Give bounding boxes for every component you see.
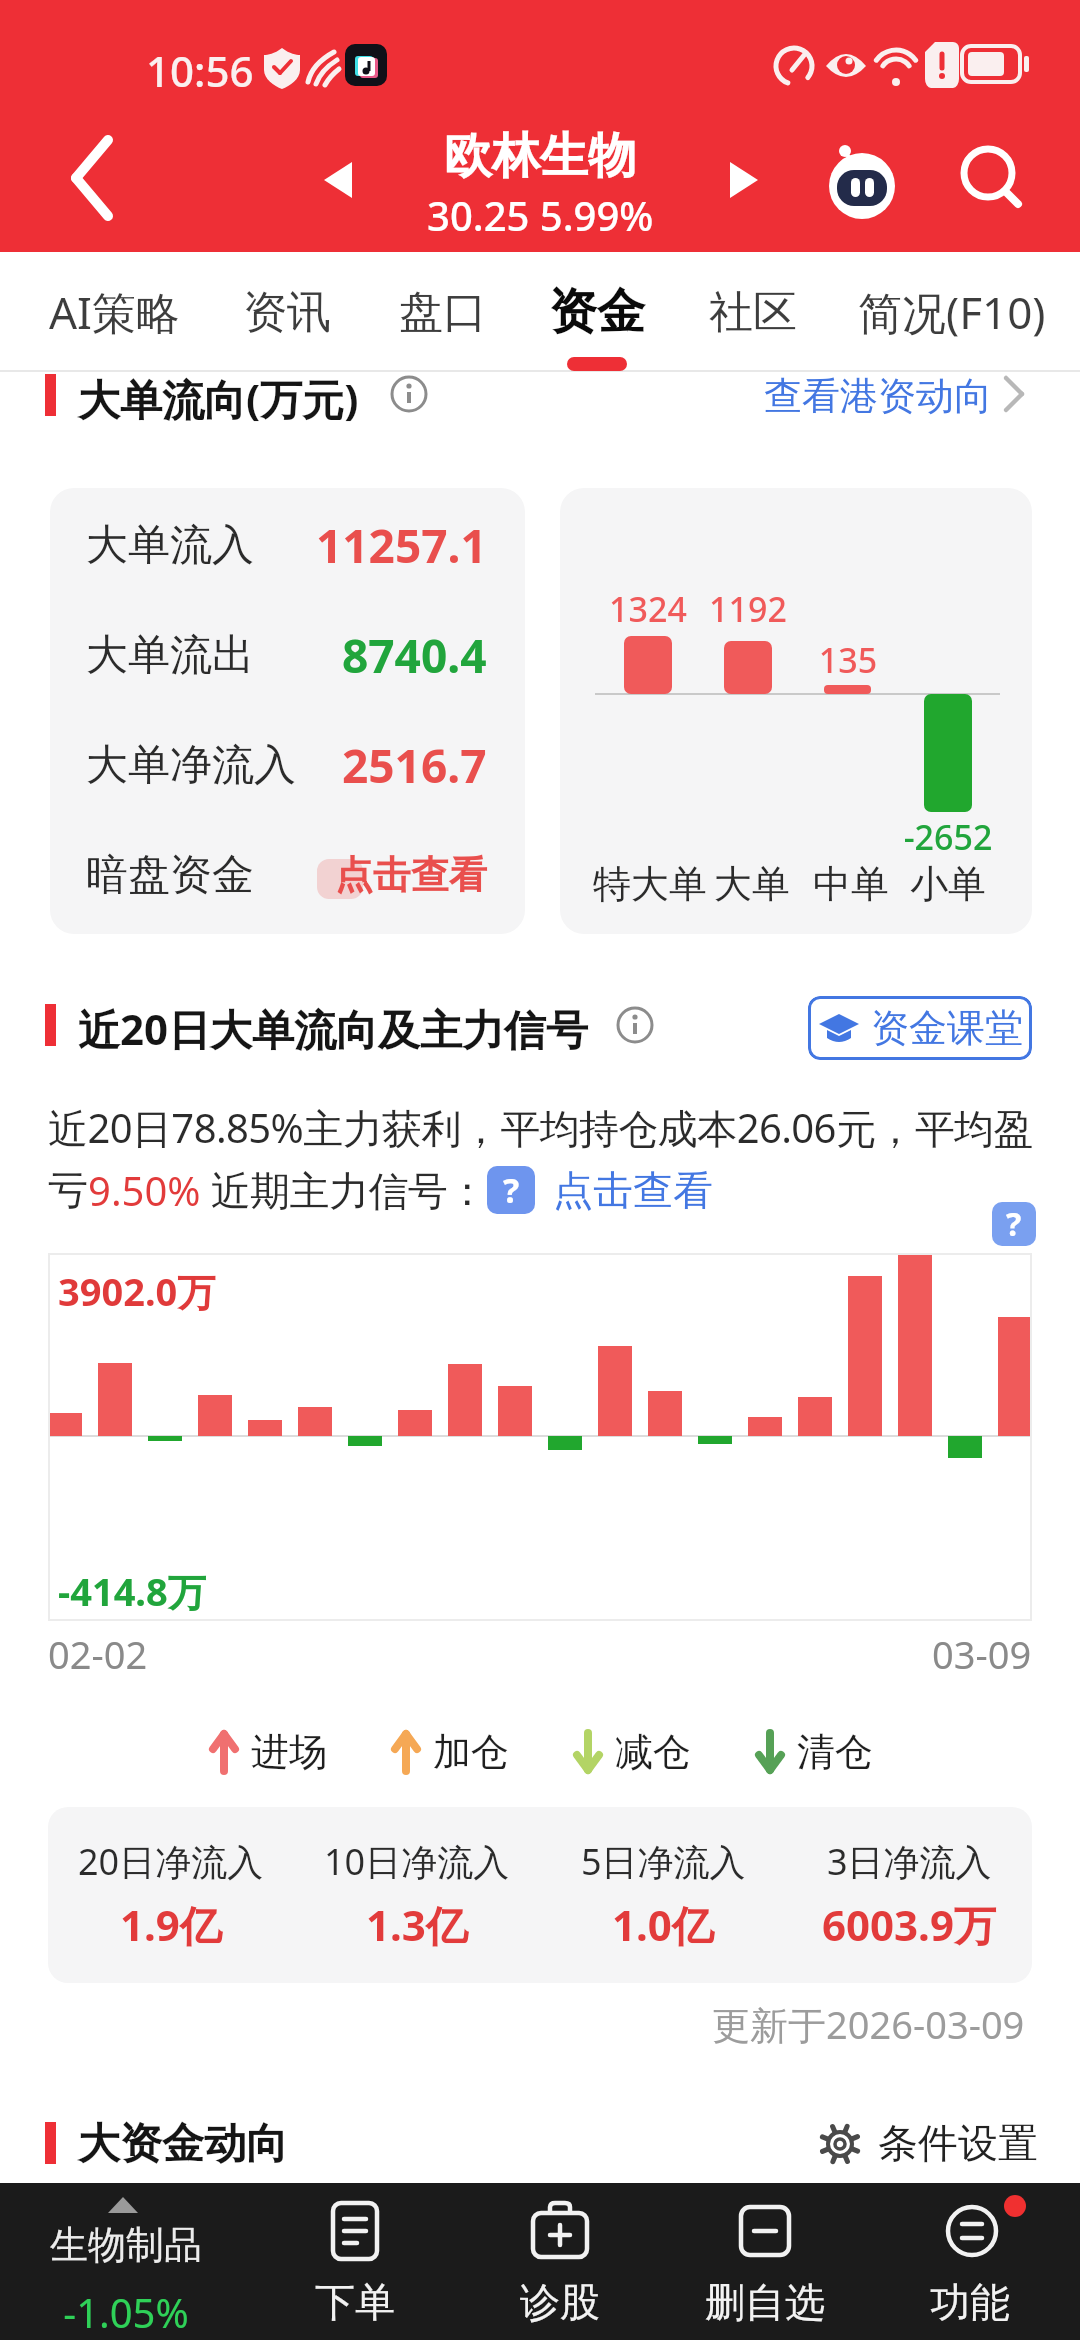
staticText: 诊股: [460, 2277, 660, 2327]
button[interactable]: 盘口: [378, 252, 508, 372]
button[interactable]: 加仓: [389, 1728, 509, 1776]
staticText: 删自选: [665, 2277, 865, 2327]
button[interactable]: 减仓: [571, 1728, 691, 1776]
staticText: 近20日大单流向及主力信号: [78, 1000, 589, 1057]
button[interactable]: 生物制品: [20, 2183, 230, 2340]
staticText: 特大单: [590, 860, 710, 908]
staticText: 资金课堂: [871, 1004, 1023, 1052]
staticText: 简况(F10): [858, 282, 1046, 342]
staticText: 3902.0万: [58, 1265, 216, 1317]
staticText: 社区: [709, 285, 797, 340]
staticText: 8740.4: [342, 624, 487, 686]
button[interactable]: 条件设置: [818, 2114, 1038, 2170]
staticText: 资金: [549, 282, 645, 342]
button[interactable]: 社区: [688, 252, 818, 372]
button[interactable]: 点击查看: [553, 1165, 713, 1215]
staticText: 生物制品: [50, 2221, 202, 2269]
staticText: 欧林生物: [444, 126, 636, 186]
staticText: 下单: [255, 2277, 455, 2327]
staticText: 03-09: [932, 1628, 1032, 1680]
staticText: 查看港资动向: [764, 372, 992, 420]
staticText: 亏: [48, 1165, 88, 1215]
staticText: 02-02: [48, 1628, 148, 1680]
button[interactable]: ?: [992, 1202, 1036, 1246]
button[interactable]: [822, 140, 902, 220]
button[interactable]: 资讯: [222, 252, 352, 372]
staticText: 清仓: [797, 1728, 873, 1776]
staticText: 1.3亿: [366, 1896, 468, 1953]
button[interactable]: [952, 140, 1032, 220]
staticText: 1.0亿: [612, 1896, 714, 1953]
staticText: 3日净流入: [827, 1837, 992, 1886]
button[interactable]: 删自选: [665, 2183, 865, 2340]
staticText: 6003.9万: [822, 1896, 996, 1953]
button[interactable]: 资金: [532, 252, 662, 372]
staticText: 大资金动向: [78, 2118, 288, 2171]
staticText: 大单: [710, 860, 794, 908]
staticText: 进场: [251, 1728, 327, 1776]
button[interactable]: 资金课堂: [808, 996, 1032, 1060]
staticText: 10日净流入: [324, 1837, 510, 1886]
button[interactable]: 3日净流入: [786, 1837, 1032, 1953]
staticText: 10:56: [146, 42, 254, 99]
staticText: 更新于2026-03-09: [712, 1998, 1025, 2050]
staticText: 大单流入: [86, 519, 254, 572]
staticText: ?: [1006, 1202, 1022, 1246]
button[interactable]: 5日净流入: [540, 1837, 786, 1953]
staticText: -414.8万: [58, 1565, 206, 1617]
button[interactable]: AI策略: [30, 252, 200, 372]
staticText: 资讯: [243, 285, 331, 340]
button[interactable]: 查看港资动向: [760, 362, 1032, 422]
staticText: 近期主力信号：: [201, 1162, 487, 1217]
staticText: 功能: [870, 2277, 1070, 2327]
staticText: 1192: [698, 586, 798, 632]
staticText: 大单流出: [86, 629, 254, 682]
button[interactable]: 暗盘资金: [86, 844, 487, 906]
button[interactable]: 大单净流入: [86, 734, 487, 796]
staticText: 30.25 5.99%: [427, 188, 654, 236]
button[interactable]: [48, 140, 128, 220]
staticText: 条件设置: [878, 2118, 1038, 2168]
button[interactable]: 诊股: [460, 2183, 660, 2340]
staticText: 1.9亿: [120, 1896, 222, 1953]
staticText: 点击查看: [335, 851, 487, 899]
button[interactable]: 进场: [207, 1728, 327, 1776]
staticText: 加仓: [433, 1728, 509, 1776]
button[interactable]: 清仓: [753, 1728, 873, 1776]
staticText: 135: [798, 637, 898, 683]
staticText: 5日净流入: [581, 1837, 746, 1886]
staticText: 减仓: [615, 1728, 691, 1776]
staticText: 1324: [598, 586, 698, 632]
button[interactable]: 大单流出: [86, 624, 487, 686]
button[interactable]: 简况(F10): [858, 252, 1080, 372]
staticText: ?: [503, 1167, 520, 1213]
staticText: 大单净流入: [86, 739, 296, 792]
staticText: 大单流向(万元): [78, 370, 359, 427]
staticText: 11257.1: [316, 514, 487, 576]
staticText: AI策略: [49, 282, 181, 342]
button[interactable]: 20日净流入: [48, 1837, 294, 1953]
button[interactable]: 大单流入: [86, 514, 487, 576]
button[interactable]: 10日净流入: [294, 1837, 540, 1953]
staticText: -2652: [893, 814, 1003, 860]
staticText: 暗盘资金: [86, 849, 254, 902]
button[interactable]: 功能: [870, 2183, 1070, 2340]
staticText: 点击查看: [553, 1165, 713, 1215]
staticText: -1.05%: [50, 2285, 202, 2339]
button[interactable]: 下单: [255, 2183, 455, 2340]
staticText: 盘口: [399, 285, 487, 340]
staticText: 中单: [809, 860, 893, 908]
staticText: 2516.7: [342, 734, 487, 796]
staticText: 9.50%: [88, 1163, 201, 1217]
staticText: 近20日78.85%主力获利，平均持仓成本26.06元，平均盈: [48, 1100, 1033, 1155]
staticText: 20日净流入: [78, 1837, 264, 1886]
staticText: 小单: [906, 860, 990, 908]
